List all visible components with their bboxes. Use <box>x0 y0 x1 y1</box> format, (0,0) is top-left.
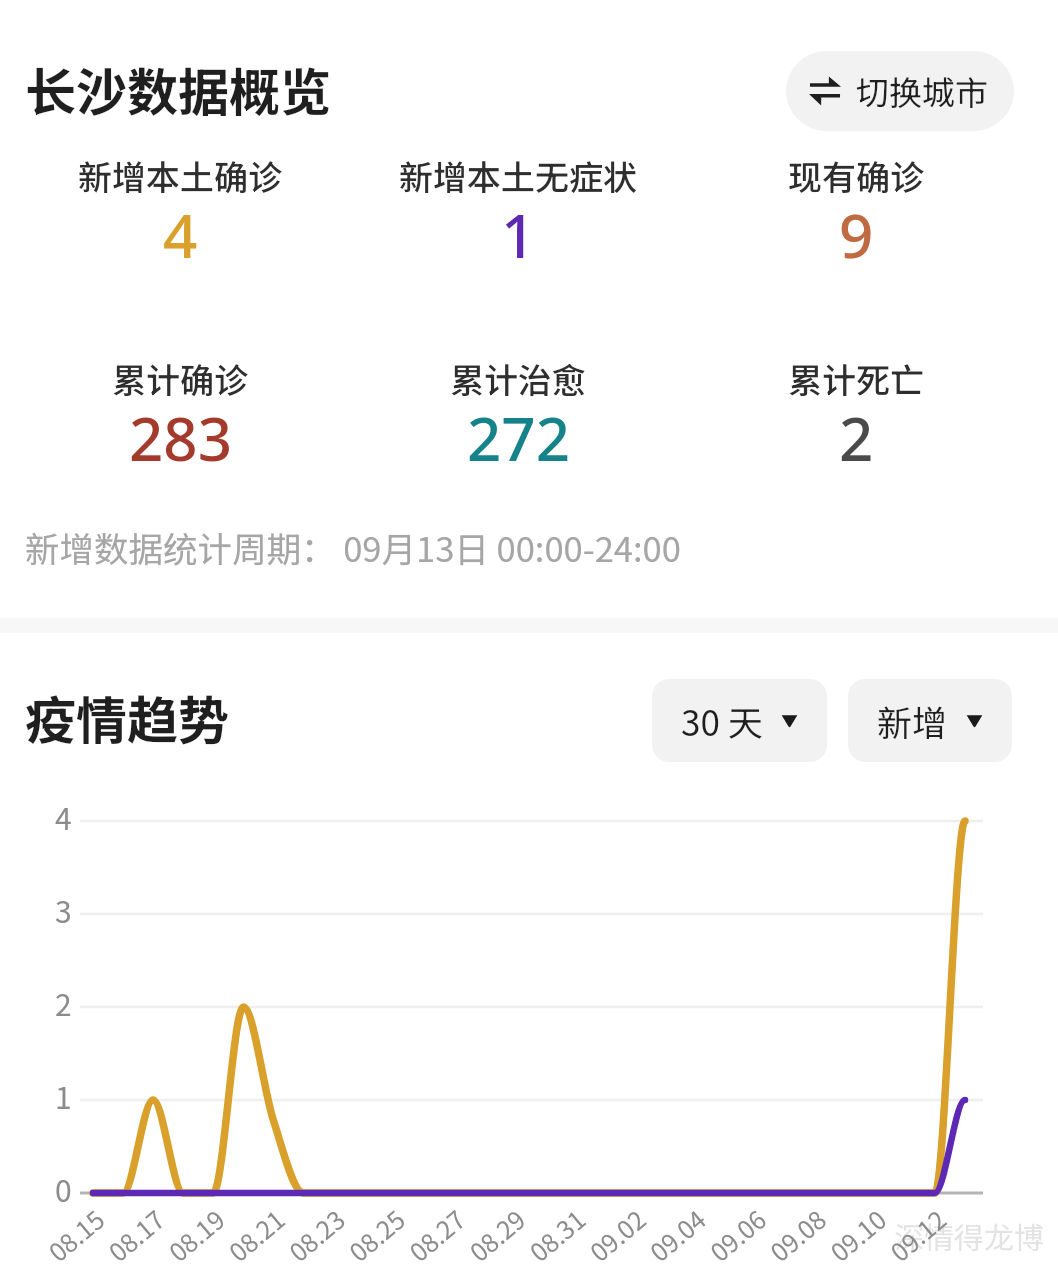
staticText: 新增本土确诊 <box>78 151 282 200</box>
staticText: 累计确诊 <box>112 354 248 403</box>
button[interactable]: 新增 <box>848 679 1012 762</box>
other: Switch city <box>809 76 841 106</box>
staticText: 现有确诊 <box>788 151 924 200</box>
staticText: 1 <box>501 194 536 276</box>
staticText: 283 <box>129 397 232 479</box>
staticText: 累计治愈 <box>450 354 586 403</box>
staticText: 深情得龙博 <box>894 1214 1044 1257</box>
staticText: 累计死亡 <box>788 354 924 403</box>
staticText: 新增本土无症状 <box>399 151 637 200</box>
button[interactable]: 30 天 <box>652 679 827 762</box>
staticText: 新增数据统计周期： 09月13日 00:00-24:00 <box>25 522 681 572</box>
staticText: 切换城市 <box>856 67 988 115</box>
button[interactable]: Switch city <box>786 51 1014 131</box>
staticText: 疫情趋势 <box>25 680 230 754</box>
staticText: 2 <box>839 397 874 479</box>
staticText: 长沙数据概览 <box>25 52 332 126</box>
staticText: 4 <box>163 194 198 276</box>
staticText: 9 <box>839 194 874 276</box>
staticText: 新增 <box>877 695 948 746</box>
staticText: 30 天 <box>681 695 763 746</box>
staticText: 272 <box>467 397 570 479</box>
